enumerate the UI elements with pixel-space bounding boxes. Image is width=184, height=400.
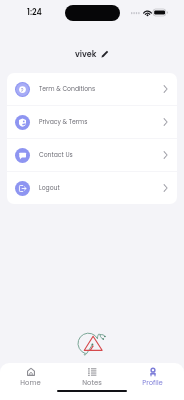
staticText: Privacy & Terms <box>39 118 88 127</box>
button[interactable]: Notes <box>61 363 122 388</box>
staticText: ? <box>21 87 24 93</box>
staticText: Profile <box>142 378 163 388</box>
staticText: Contact Us <box>39 151 73 160</box>
staticText: Notes <box>82 378 102 388</box>
button[interactable]: Contact Us <box>7 139 177 171</box>
staticText: vivek <box>75 49 97 60</box>
staticText: Home <box>20 378 41 388</box>
staticText: 1:24 <box>27 7 42 18</box>
button[interactable]: Profile <box>122 363 183 388</box>
button[interactable]: ? <box>7 73 177 105</box>
button[interactable]: Logout <box>7 172 177 204</box>
staticText: Term & Conditions <box>39 85 96 94</box>
button[interactable]: Privacy & Terms <box>7 106 177 138</box>
button[interactable]: Home <box>0 363 61 388</box>
button[interactable]: Edit profile name <box>101 50 109 58</box>
staticText: Logout <box>39 184 60 193</box>
